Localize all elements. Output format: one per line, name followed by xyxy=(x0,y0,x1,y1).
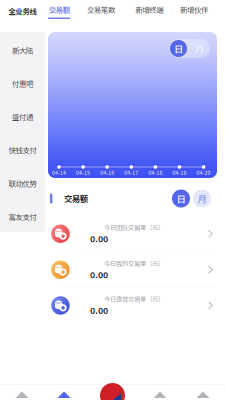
staticText: 今日我的交易量（元） xyxy=(104,258,164,268)
staticText: 04-16 xyxy=(100,169,114,176)
staticText: 今日直营交易量（元） xyxy=(104,294,164,303)
staticText: 月 xyxy=(197,192,206,205)
button[interactable]: 首页 xyxy=(15,391,29,399)
button[interactable]: 数据 xyxy=(57,391,71,399)
staticText: 日 xyxy=(174,42,183,55)
staticText: 日 xyxy=(176,192,185,205)
staticText: 新增终端 xyxy=(135,4,163,15)
staticText: 快钱支付 xyxy=(8,145,36,155)
button[interactable]: 联动优势 xyxy=(0,167,45,200)
button[interactable]: 月 xyxy=(193,189,211,207)
button[interactable]: 新增伙伴 xyxy=(174,0,213,22)
button[interactable]: 新大陆 xyxy=(0,33,45,67)
staticText: 04-19 xyxy=(172,169,186,176)
button[interactable]: 交易额 xyxy=(44,0,74,22)
button[interactable]: 日 xyxy=(172,189,190,207)
button[interactable]: 今日团队交易量（元） xyxy=(48,216,217,252)
staticText: 交易笔数 xyxy=(87,4,115,15)
button[interactable]: 今日直营交易量（元） xyxy=(48,288,217,323)
button[interactable]: 盛付通 xyxy=(0,100,45,133)
button[interactable]: 今日我的交易量（元） xyxy=(48,252,217,288)
staticText: 月 xyxy=(195,42,204,55)
button[interactable]: 月 xyxy=(191,40,208,57)
staticText: 04-20 xyxy=(197,169,211,176)
staticText: 0.00 xyxy=(90,304,108,316)
staticText: 04-15 xyxy=(76,169,90,176)
button[interactable]: 日 xyxy=(170,40,187,57)
staticText: 0.00 xyxy=(90,268,108,281)
staticText: 新大陆 xyxy=(12,45,33,55)
staticText: 盛付通 xyxy=(12,111,33,122)
staticText: 全业务线 xyxy=(8,6,36,16)
button[interactable]: 我的 xyxy=(196,391,210,399)
button[interactable]: 全业务线 xyxy=(0,0,45,22)
button[interactable]: 富友支付 xyxy=(0,200,45,233)
staticText: 付惠吧 xyxy=(12,78,33,89)
button[interactable]: 收款 xyxy=(97,380,128,400)
staticText: 交易额 xyxy=(49,4,70,15)
button[interactable]: 付惠吧 xyxy=(0,67,45,100)
staticText: 富友支付 xyxy=(8,211,36,222)
button[interactable]: 新增终端 xyxy=(130,0,168,22)
staticText: 新增伙伴 xyxy=(180,4,208,15)
staticText: 04-17 xyxy=(124,169,138,176)
button[interactable]: 交易笔数 xyxy=(82,0,120,22)
staticText: 交易额 xyxy=(64,192,88,204)
button[interactable]: 商城 xyxy=(153,391,167,399)
button[interactable]: 快钱支付 xyxy=(0,133,45,167)
staticText: 联动优势 xyxy=(8,178,36,189)
staticText: 04-14 xyxy=(52,169,66,176)
staticText: 04-18 xyxy=(148,169,162,176)
staticText: 0.00 xyxy=(90,232,108,245)
staticText: 今日团队交易量（元） xyxy=(104,222,164,232)
